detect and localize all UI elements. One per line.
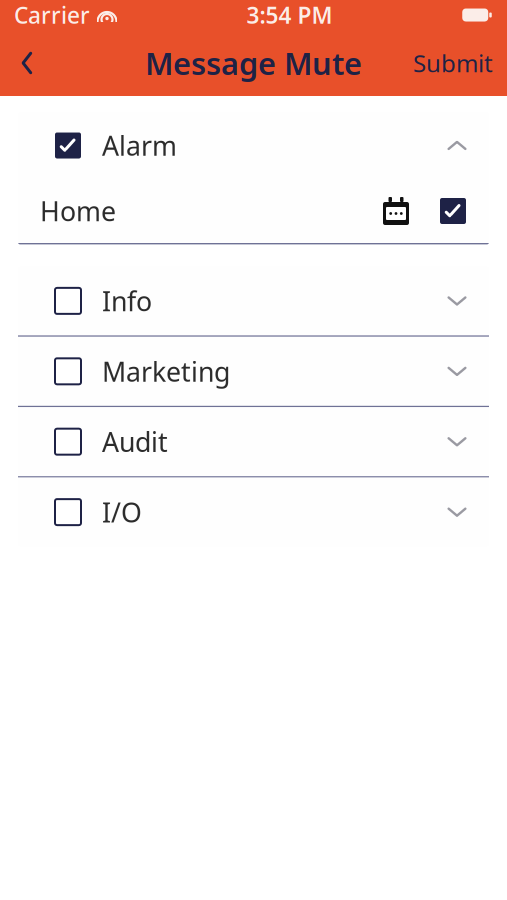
button[interactable]: Back bbox=[0, 30, 54, 96]
button[interactable]: Info bbox=[18, 266, 489, 335]
button[interactable]: Home bbox=[18, 179, 489, 243]
staticText: I/O bbox=[102, 494, 142, 530]
staticText: Message Mute bbox=[145, 43, 362, 83]
staticText: 3:54 PM bbox=[246, 0, 332, 30]
button[interactable]: Audit bbox=[18, 407, 489, 476]
button[interactable]: Submit bbox=[399, 30, 507, 96]
staticText: Marketing bbox=[102, 354, 230, 389]
staticText: Info bbox=[102, 283, 152, 319]
staticText: Alarm bbox=[102, 128, 177, 163]
button[interactable]: I/O bbox=[18, 478, 489, 547]
staticText: Submit bbox=[413, 47, 493, 79]
button[interactable]: Alarm bbox=[18, 112, 489, 179]
staticText: Carrier bbox=[14, 0, 90, 30]
staticText: Home bbox=[40, 193, 116, 229]
staticText: Audit bbox=[102, 424, 168, 459]
button[interactable]: Marketing bbox=[18, 337, 489, 406]
